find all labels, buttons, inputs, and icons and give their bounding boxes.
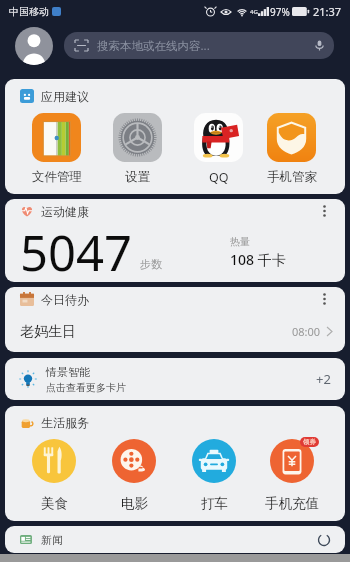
- button[interactable]: More options: [315, 290, 333, 308]
- staticText: 情景智能: [46, 365, 90, 379]
- staticText: 电影: [121, 495, 148, 512]
- button[interactable]: 手机管家: [266, 113, 317, 185]
- staticText: 应用建议: [41, 89, 89, 104]
- staticText: 美食: [41, 495, 68, 512]
- button[interactable]: 打车: [192, 439, 236, 483]
- button[interactable]: 老妈生日: [5, 311, 345, 352]
- staticText: 运动健康: [41, 204, 89, 219]
- button[interactable]: 美食: [32, 439, 76, 483]
- button[interactable]: 搜索本地或在线内容...: [64, 32, 334, 59]
- staticText: 打车: [201, 495, 228, 512]
- staticText: 108 千卡: [230, 250, 286, 269]
- staticText: 中国移动: [9, 5, 49, 18]
- staticText: 08:00: [292, 324, 321, 339]
- button[interactable]: 电影: [112, 439, 156, 483]
- staticText: 领券: [303, 438, 316, 446]
- staticText: 老妈生日: [20, 323, 76, 341]
- button[interactable]: 设置: [112, 113, 163, 185]
- staticText: 点击查看更多卡片: [46, 381, 126, 394]
- button[interactable]: More options: [315, 202, 333, 220]
- staticText: 21:37: [313, 4, 342, 19]
- staticText: +2: [316, 370, 331, 388]
- staticText: QQ: [209, 169, 229, 186]
- button[interactable]: QQ: [193, 113, 244, 186]
- other: Refresh: [317, 533, 331, 547]
- staticText: 热量: [230, 235, 250, 248]
- button[interactable]: Profile: [15, 27, 53, 65]
- staticText: 今日待办: [41, 292, 89, 307]
- staticText: 4G: [250, 8, 258, 16]
- button[interactable]: 领券: [270, 439, 314, 483]
- staticText: 手机充值: [265, 495, 319, 512]
- staticText: 生活服务: [41, 415, 89, 430]
- staticText: 文件管理: [32, 169, 82, 185]
- staticText: 5047: [20, 219, 133, 278]
- staticText: 设置: [125, 169, 150, 185]
- button[interactable]: 情景智能: [5, 358, 345, 400]
- staticText: 新闻: [41, 533, 63, 547]
- staticText: 97%: [270, 5, 290, 19]
- staticText: 搜索本地或在线内容...: [97, 38, 210, 54]
- staticText: 手机管家: [267, 169, 317, 185]
- staticText: 步数: [140, 257, 162, 271]
- button[interactable]: 文件管理: [31, 113, 82, 185]
